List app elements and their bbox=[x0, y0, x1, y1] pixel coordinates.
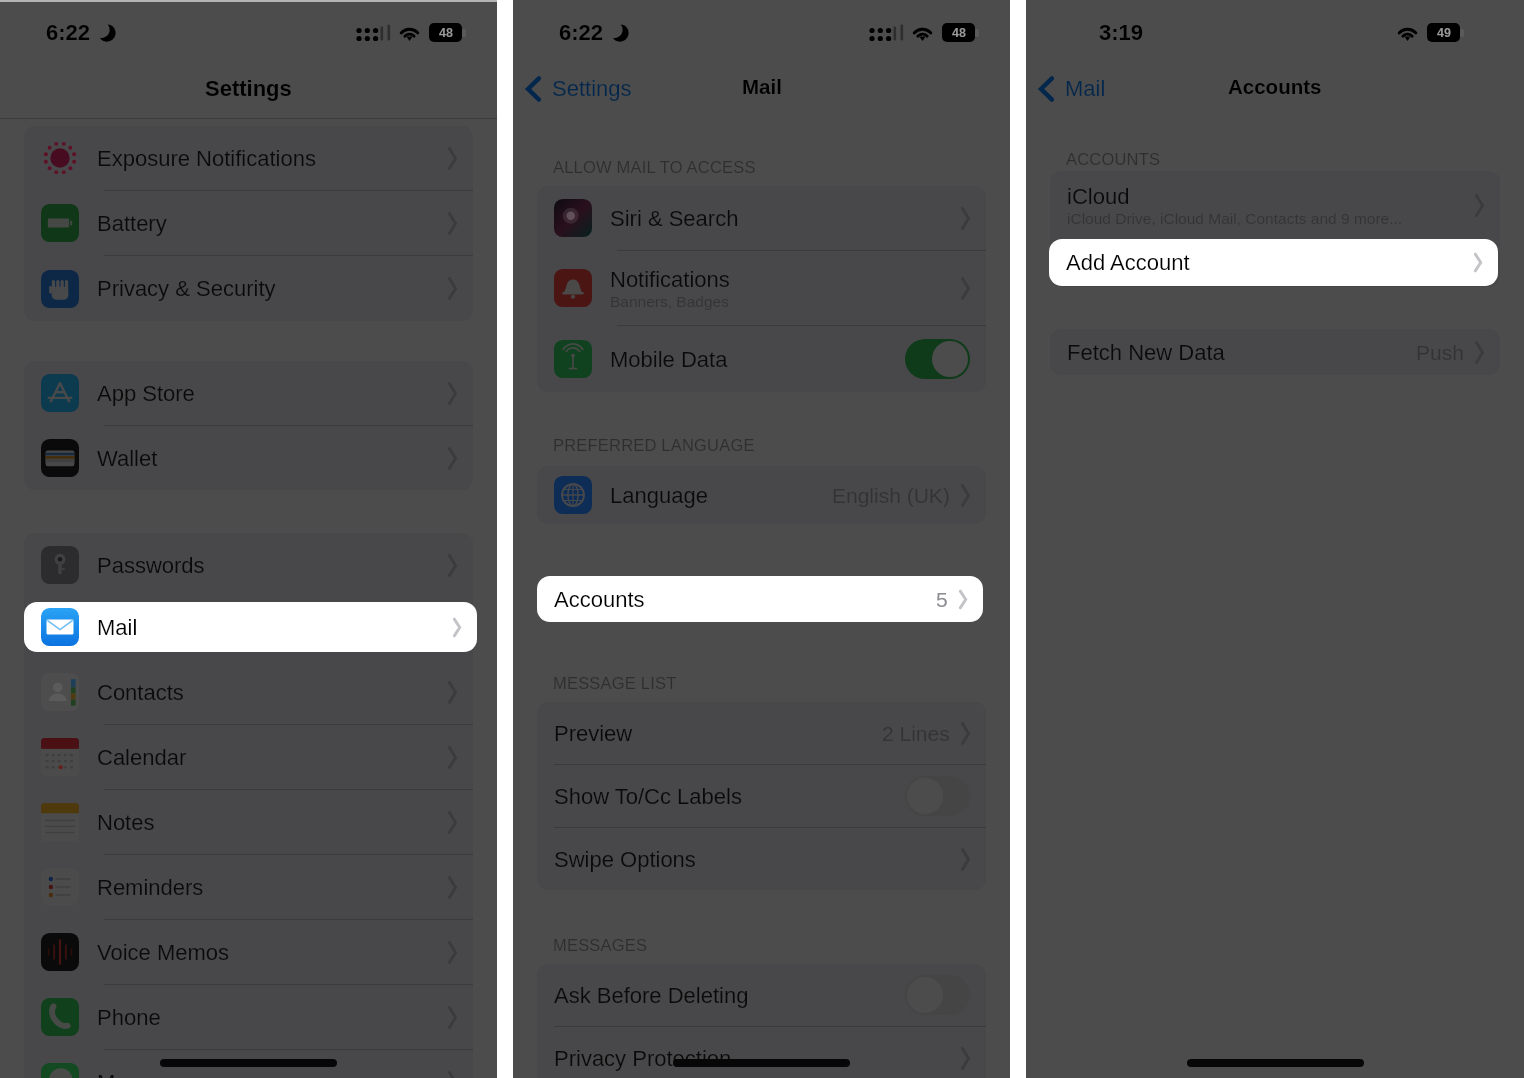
button[interactable]: Contacts bbox=[24, 660, 473, 724]
button[interactable]: Wallet bbox=[24, 426, 473, 490]
staticText: Mail bbox=[97, 615, 138, 640]
staticText: Banners, Badges bbox=[610, 293, 729, 310]
staticText: Messages bbox=[97, 1070, 198, 1078]
staticText: 48 bbox=[952, 26, 966, 40]
staticText: Battery bbox=[97, 211, 167, 236]
button[interactable]: Fetch New Data bbox=[1050, 329, 1500, 375]
staticText: Passwords bbox=[97, 553, 205, 578]
button[interactable]: Siri & Search bbox=[537, 186, 986, 250]
staticText: 48 bbox=[439, 26, 453, 40]
staticText: Add Account bbox=[1066, 250, 1190, 275]
staticText: Settings bbox=[552, 76, 632, 101]
button[interactable]: Switch, off bbox=[905, 776, 970, 816]
staticText: Settings bbox=[205, 76, 292, 101]
staticText: MESSAGES bbox=[553, 936, 648, 954]
staticText: Swipe Options bbox=[554, 847, 696, 872]
button[interactable]: Battery bbox=[24, 191, 473, 255]
staticText: Ask Before Deleting bbox=[554, 983, 749, 1008]
staticText: Language bbox=[610, 483, 708, 508]
staticText: Mail bbox=[742, 75, 782, 98]
staticText: 3:19 bbox=[1099, 20, 1144, 45]
staticText: Wallet bbox=[97, 446, 158, 471]
staticText: Fetch New Data bbox=[1067, 340, 1225, 365]
button[interactable]: Show To/Cc Labels bbox=[537, 765, 986, 827]
button[interactable]: Privacy & Security bbox=[24, 256, 473, 321]
button[interactable]: Exposure Notifications bbox=[24, 126, 473, 190]
staticText: iCloud bbox=[1067, 184, 1130, 209]
staticText: MESSAGE LIST bbox=[553, 674, 677, 692]
staticText: Calendar bbox=[97, 745, 187, 770]
staticText: ACCOUNTS bbox=[1066, 150, 1161, 168]
staticText: 5 bbox=[936, 588, 948, 611]
staticText: Mobile Data bbox=[610, 347, 728, 372]
staticText: 2 Lines bbox=[882, 722, 950, 745]
staticText: Privacy Protection bbox=[554, 1046, 732, 1071]
button[interactable]: Accounts bbox=[537, 576, 983, 622]
staticText: Show To/Cc Labels bbox=[554, 784, 742, 809]
button[interactable]: Preview bbox=[537, 702, 986, 764]
button[interactable]: Calendar bbox=[24, 725, 473, 789]
button[interactable]: Notes bbox=[24, 790, 473, 854]
staticText: Accounts bbox=[1228, 75, 1322, 98]
staticText: Reminders bbox=[97, 875, 204, 900]
staticText: App Store bbox=[97, 381, 195, 406]
button[interactable]: App Store bbox=[24, 361, 473, 425]
button[interactable]: Add Account bbox=[1049, 239, 1498, 286]
button[interactable]: Mail bbox=[24, 602, 477, 652]
button[interactable]: Settings bbox=[517, 64, 640, 105]
button[interactable]: Phone bbox=[24, 985, 473, 1049]
staticText: 49 bbox=[1437, 26, 1451, 40]
button[interactable]: Messages bbox=[24, 1050, 473, 1078]
staticText: Preview bbox=[554, 721, 633, 746]
staticText: English (UK) bbox=[832, 484, 950, 507]
button[interactable]: Ask Before Deleting bbox=[537, 964, 986, 1026]
staticText: Mail bbox=[1065, 76, 1106, 101]
button[interactable]: Notifications bbox=[537, 251, 986, 325]
button[interactable]: Language bbox=[537, 466, 986, 524]
button[interactable]: Mobile Data bbox=[537, 326, 986, 392]
staticText: Notifications bbox=[610, 267, 730, 292]
staticText: Contacts bbox=[97, 680, 184, 705]
button[interactable]: Passwords bbox=[24, 533, 473, 597]
staticText: Exposure Notifications bbox=[97, 146, 316, 171]
staticText: PREFERRED LANGUAGE bbox=[553, 436, 755, 454]
button[interactable]: iCloud bbox=[1050, 171, 1500, 239]
button[interactable]: Switch, on bbox=[905, 339, 970, 379]
button[interactable]: Mail bbox=[1030, 64, 1114, 105]
staticText: Phone bbox=[97, 1005, 161, 1030]
button[interactable]: Privacy Protection bbox=[537, 1027, 986, 1078]
staticText: Notes bbox=[97, 810, 155, 835]
staticText: Voice Memos bbox=[97, 940, 230, 965]
staticText: Accounts bbox=[554, 587, 645, 612]
staticText: Siri & Search bbox=[610, 206, 739, 231]
staticText: 6:22 bbox=[559, 20, 604, 45]
staticText: iCloud Drive, iCloud Mail, Contacts and … bbox=[1067, 210, 1403, 227]
button[interactable]: Voice Memos bbox=[24, 920, 473, 984]
staticText: ALLOW MAIL TO ACCESS bbox=[553, 158, 756, 176]
staticText: 6:22 bbox=[46, 20, 91, 45]
staticText: Push bbox=[1416, 341, 1464, 364]
button[interactable]: Reminders bbox=[24, 855, 473, 919]
button[interactable]: Swipe Options bbox=[537, 828, 986, 890]
staticText: Privacy & Security bbox=[97, 276, 276, 301]
button[interactable]: Switch, off bbox=[905, 975, 970, 1015]
